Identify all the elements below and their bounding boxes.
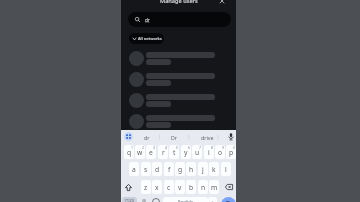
- button[interactable]: l: [221, 162, 231, 176]
- staticText: All networks: [138, 36, 162, 41]
- button[interactable]: m: [209, 180, 219, 194]
- staticText: v: [178, 183, 182, 192]
- staticText: d: [155, 165, 160, 174]
- staticText: 4: [165, 145, 167, 150]
- staticText: 9: [222, 145, 224, 150]
- button[interactable]: ?123: [122, 197, 137, 202]
- staticText: m: [211, 183, 218, 192]
- button[interactable]: [124, 132, 133, 141]
- button[interactable]: e: [146, 145, 156, 159]
- staticText: 0: [233, 145, 235, 150]
- staticText: English: [178, 199, 193, 202]
- button[interactable]: English: [163, 197, 208, 202]
- staticText: .: [212, 197, 214, 202]
- staticText: 1: [131, 145, 133, 150]
- staticText: k: [212, 165, 216, 174]
- button[interactable]: v: [175, 180, 185, 194]
- button[interactable]: f: [164, 162, 174, 176]
- button[interactable]: x: [152, 180, 162, 194]
- button[interactable]: o: [215, 145, 225, 159]
- button[interactable]: Dr: [166, 131, 183, 143]
- staticText: 8: [211, 145, 213, 150]
- staticText: 6: [188, 145, 190, 150]
- button[interactable]: @: [140, 196, 149, 202]
- staticText: 7: [199, 145, 201, 150]
- staticText: n: [201, 183, 206, 192]
- button[interactable]: n: [198, 180, 208, 194]
- staticText: u: [195, 148, 200, 157]
- button[interactable]: u: [192, 145, 202, 159]
- staticText: w: [137, 148, 143, 157]
- staticText: z: [144, 183, 148, 192]
- button[interactable]: b: [186, 180, 196, 194]
- staticText: l: [225, 165, 227, 174]
- staticText: dr: [144, 134, 150, 141]
- button[interactable]: [151, 197, 161, 202]
- staticText: t: [173, 148, 176, 157]
- button[interactable]: drive: [197, 131, 218, 143]
- staticText: q: [127, 148, 132, 157]
- staticText: dr: [145, 17, 150, 23]
- button[interactable]: h: [186, 162, 196, 176]
- staticText: p: [229, 148, 234, 157]
- button[interactable]: t: [169, 145, 179, 159]
- button[interactable]: a: [129, 162, 139, 176]
- button[interactable]: r: [158, 145, 168, 159]
- staticText: r: [162, 148, 165, 157]
- staticText: f: [168, 165, 171, 174]
- button[interactable]: z: [141, 180, 151, 194]
- button[interactable]: q: [124, 145, 134, 159]
- staticText: g: [178, 165, 183, 174]
- staticText: b: [189, 183, 194, 192]
- staticText: e: [149, 148, 153, 157]
- button[interactable]: .: [208, 197, 217, 202]
- staticText: y: [184, 148, 188, 157]
- staticText: Dr: [171, 134, 178, 141]
- button[interactable]: k: [209, 162, 219, 176]
- button[interactable]: dr: [128, 12, 231, 27]
- staticText: drive: [201, 134, 214, 141]
- button[interactable]: [218, 0, 226, 5]
- button[interactable]: g: [175, 162, 185, 176]
- staticText: c: [167, 183, 171, 192]
- staticText: Manage users: [160, 0, 198, 5]
- button[interactable]: All networks: [129, 33, 164, 44]
- staticText: 2: [142, 145, 144, 150]
- staticText: h: [189, 165, 194, 174]
- button[interactable]: d: [152, 162, 162, 176]
- button[interactable]: s: [141, 162, 151, 176]
- button[interactable]: [221, 197, 236, 202]
- staticText: s: [144, 165, 148, 174]
- button[interactable]: [222, 180, 236, 194]
- staticText: ?123: [125, 198, 135, 202]
- staticText: @: [142, 198, 147, 202]
- staticText: x: [155, 183, 159, 192]
- staticText: 3: [153, 145, 155, 150]
- staticText: i: [208, 148, 210, 157]
- button[interactable]: j: [198, 162, 208, 176]
- staticText: j: [202, 165, 204, 174]
- staticText: o: [218, 148, 223, 157]
- button[interactable]: p: [226, 145, 236, 159]
- button[interactable]: y: [181, 145, 191, 159]
- button[interactable]: [226, 131, 236, 142]
- button[interactable]: c: [164, 180, 174, 194]
- button[interactable]: dr: [138, 131, 155, 143]
- staticText: 5: [176, 145, 178, 150]
- button[interactable]: w: [135, 145, 145, 159]
- button[interactable]: [121, 180, 135, 194]
- button[interactable]: i: [204, 145, 214, 159]
- staticText: a: [132, 165, 136, 174]
